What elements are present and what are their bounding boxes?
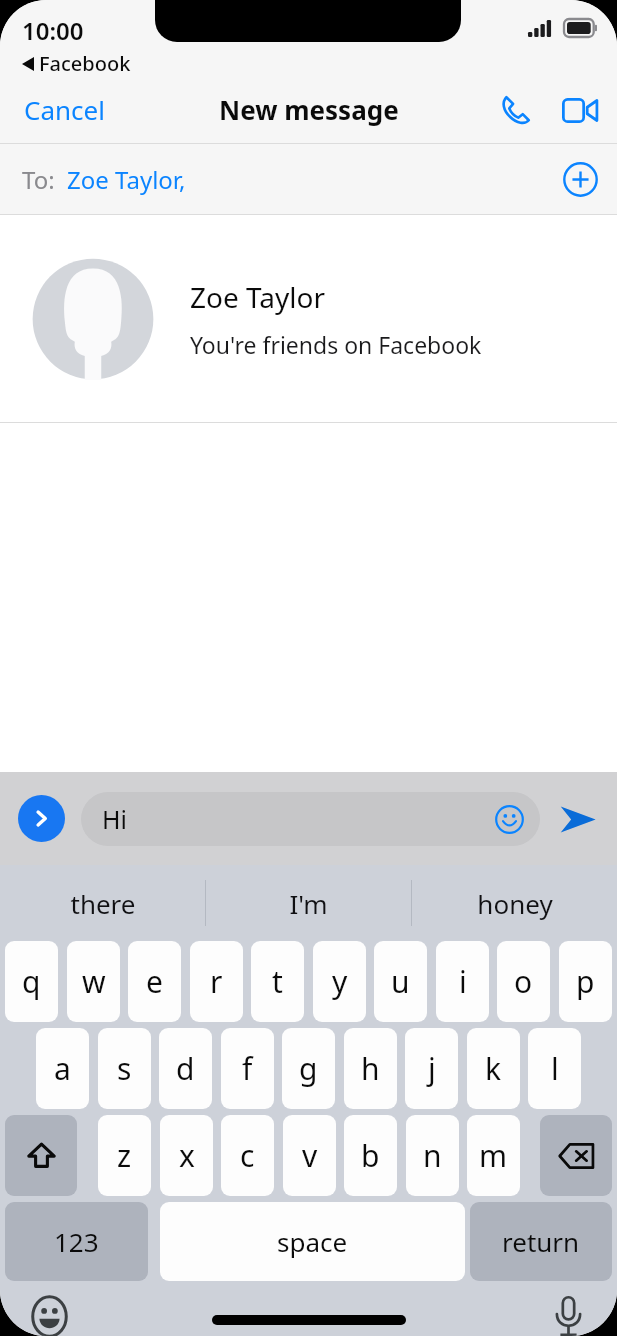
staticText: x bbox=[179, 1135, 195, 1176]
staticText: w bbox=[82, 961, 106, 1002]
staticText: i bbox=[459, 961, 467, 1002]
button[interactable]: Add contact bbox=[555, 154, 605, 204]
button[interactable]: f bbox=[221, 1028, 274, 1109]
staticText: k bbox=[485, 1048, 502, 1089]
staticText: I'm bbox=[289, 886, 328, 921]
button[interactable]: u bbox=[374, 941, 427, 1022]
button[interactable]: space bbox=[160, 1202, 465, 1281]
button[interactable]: i bbox=[436, 941, 489, 1022]
staticText: r bbox=[210, 961, 223, 1002]
staticText: b bbox=[361, 1135, 380, 1176]
button[interactable]: Delete bbox=[540, 1115, 612, 1196]
button[interactable]: n bbox=[406, 1115, 459, 1196]
staticText: h bbox=[361, 1048, 380, 1089]
button[interactable]: b bbox=[344, 1115, 397, 1196]
staticText: 123 bbox=[54, 1224, 99, 1259]
button[interactable]: w bbox=[67, 941, 120, 1022]
button[interactable]: r bbox=[190, 941, 243, 1022]
button[interactable]: Video call bbox=[555, 85, 605, 135]
button[interactable]: m bbox=[467, 1115, 520, 1196]
button[interactable]: e bbox=[128, 941, 181, 1022]
button[interactable]: Zoe Taylor, bbox=[67, 163, 186, 196]
staticText: Hi bbox=[102, 802, 127, 836]
staticText: n bbox=[423, 1135, 442, 1176]
staticText: New message bbox=[219, 92, 399, 127]
staticText: p bbox=[576, 961, 595, 1002]
staticText: space bbox=[277, 1224, 348, 1259]
staticText: honey bbox=[477, 886, 553, 921]
button[interactable]: a bbox=[36, 1028, 89, 1109]
button[interactable]: return bbox=[470, 1202, 612, 1281]
button[interactable]: 123 bbox=[5, 1202, 148, 1281]
staticText: z bbox=[117, 1135, 132, 1176]
staticText: g bbox=[299, 1048, 318, 1089]
staticText: a bbox=[54, 1048, 71, 1089]
staticText: t bbox=[272, 961, 283, 1002]
button[interactable]: Zoe Taylor bbox=[0, 215, 617, 422]
staticText: d bbox=[176, 1048, 195, 1089]
button[interactable]: Audio call bbox=[491, 85, 541, 135]
staticText: 10:00 bbox=[22, 14, 84, 47]
staticText: m bbox=[479, 1135, 508, 1176]
button[interactable]: x bbox=[160, 1115, 213, 1196]
staticText: q bbox=[22, 961, 41, 1002]
button[interactable]: t bbox=[251, 941, 304, 1022]
staticText: o bbox=[514, 961, 533, 1002]
button[interactable]: there bbox=[0, 865, 205, 941]
button[interactable]: Shift bbox=[5, 1115, 77, 1196]
button[interactable]: g bbox=[282, 1028, 335, 1109]
button[interactable]: p bbox=[559, 941, 612, 1022]
staticText: Zoe Taylor bbox=[190, 278, 326, 316]
staticText: e bbox=[146, 961, 163, 1002]
staticText: Zoe Taylor, bbox=[67, 163, 186, 196]
staticText: To: bbox=[22, 163, 55, 196]
staticText: f bbox=[242, 1048, 253, 1089]
button[interactable]: j bbox=[405, 1028, 458, 1109]
staticText: s bbox=[117, 1048, 132, 1089]
button[interactable]: z bbox=[98, 1115, 151, 1196]
staticText: y bbox=[332, 961, 348, 1002]
staticText: return bbox=[502, 1224, 580, 1259]
staticText: v bbox=[302, 1135, 318, 1176]
staticText: You're friends on Facebook bbox=[190, 329, 482, 360]
button[interactable]: More options bbox=[18, 795, 65, 842]
button[interactable]: q bbox=[5, 941, 58, 1022]
button[interactable]: Cancel bbox=[0, 78, 129, 141]
button[interactable]: v bbox=[283, 1115, 336, 1196]
button[interactable]: Emoji bbox=[491, 801, 527, 837]
staticText: there bbox=[70, 886, 136, 921]
button[interactable]: I'm bbox=[206, 865, 411, 941]
staticText: u bbox=[391, 961, 410, 1002]
staticText: l bbox=[551, 1048, 559, 1089]
button[interactable]: l bbox=[528, 1028, 581, 1109]
button[interactable]: Hi bbox=[81, 792, 540, 846]
staticText: Cancel bbox=[24, 92, 105, 127]
staticText: j bbox=[428, 1048, 436, 1089]
button[interactable]: Dictation bbox=[541, 1289, 595, 1336]
button[interactable]: s bbox=[98, 1028, 151, 1109]
button[interactable]: Send bbox=[553, 794, 603, 844]
button[interactable]: honey bbox=[412, 865, 617, 941]
button[interactable]: Emoji keyboard bbox=[22, 1289, 76, 1336]
button[interactable]: k bbox=[467, 1028, 520, 1109]
staticText: Facebook bbox=[39, 50, 131, 77]
button[interactable]: o bbox=[497, 941, 550, 1022]
staticText: c bbox=[240, 1135, 255, 1176]
button[interactable]: d bbox=[159, 1028, 212, 1109]
button[interactable]: c bbox=[221, 1115, 274, 1196]
button[interactable]: y bbox=[313, 941, 366, 1022]
button[interactable]: h bbox=[344, 1028, 397, 1109]
